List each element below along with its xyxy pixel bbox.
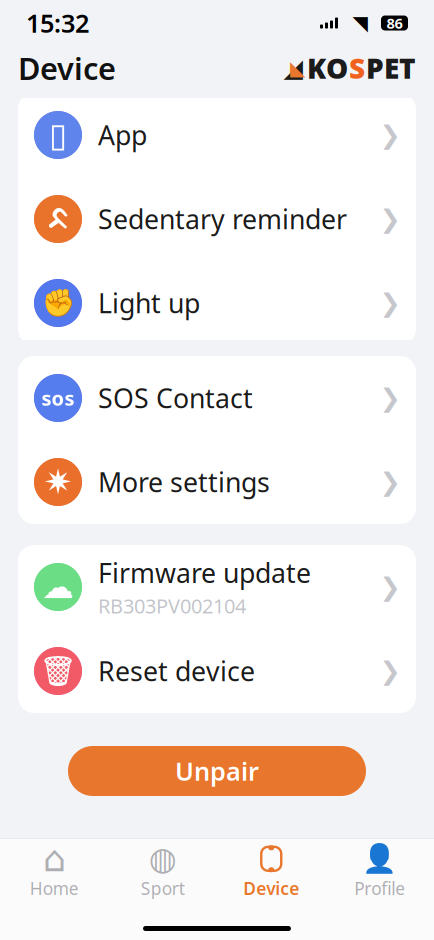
button[interactable]: ▯ [18,93,416,177]
staticText: S [349,49,365,87]
staticText: ❯ [379,121,400,149]
staticText: ❯ [379,289,400,317]
button[interactable]: ⌂ [0,845,108,901]
button[interactable]: ◍ [108,845,217,901]
staticText: ✊ [41,288,74,318]
button[interactable]: sos [18,356,416,440]
staticText: Sedentary reminder [98,201,347,237]
staticText: Home [30,877,79,900]
staticText: ❯ [379,657,400,685]
staticText: Device [18,48,116,88]
staticText: Device [243,877,299,900]
button[interactable]: Device [217,845,325,901]
staticText: 🗑 [39,654,76,688]
button[interactable]: ✷ [18,440,416,524]
staticText: PET [366,49,416,87]
staticText: ᨅ [46,203,69,235]
staticText: 86 [386,13,402,33]
staticText: ▯ [49,116,67,154]
button[interactable]: 👤 [325,845,434,901]
staticText: Light up [98,285,200,321]
staticText: 👤 [362,843,397,875]
staticText: ❯ [379,468,400,496]
staticText: ◍ [149,841,177,877]
staticText: Firmware update [98,555,311,590]
staticText: Unpair [175,754,259,788]
staticText: KO [307,49,348,87]
staticText: SOS Contact [98,380,253,416]
staticText: ❯ [379,205,400,233]
staticText: sos [41,385,74,411]
staticText: 15:32 [26,6,89,40]
button[interactable]: ᨅ [18,177,416,261]
staticText: ✷ [43,462,72,502]
button[interactable]: 🗑 [18,629,416,713]
staticText: ◣ [290,57,305,79]
staticText: ☁ [42,569,74,605]
staticText: ❯ [379,384,400,412]
staticText: More settings [98,464,270,500]
staticText: Sport [141,877,185,900]
staticText: ◥ [352,12,367,34]
button[interactable]: Unpair [68,746,366,796]
staticText: ⌂ [43,838,66,879]
staticText: Reset device [98,653,255,689]
staticText: Profile [354,877,405,900]
staticText: App [98,117,147,153]
button[interactable]: ✊ [18,261,416,345]
staticText: RB303PV002104 [98,592,246,619]
staticText: ◢ [283,54,302,82]
staticText: ❯ [379,573,400,601]
button[interactable]: ☁ [18,545,416,629]
